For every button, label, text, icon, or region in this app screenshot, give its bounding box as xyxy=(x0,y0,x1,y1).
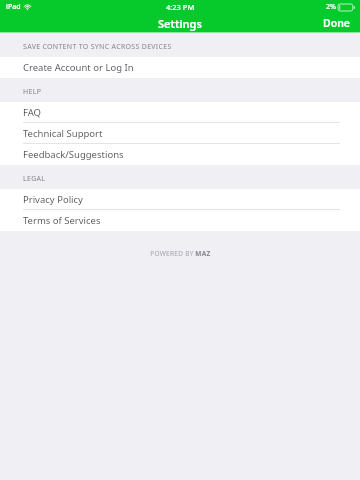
staticText: Terms of Services xyxy=(23,214,101,227)
staticText: 2% xyxy=(326,2,336,12)
button[interactable]: FAQ xyxy=(0,102,360,123)
button[interactable]: Technical Support xyxy=(0,123,360,144)
staticText: Create Account or Log In xyxy=(23,61,134,74)
staticText: 4:23 PM xyxy=(166,2,195,12)
staticText: SAVE CONTENT TO SYNC ACROSS DEVICES xyxy=(23,42,172,52)
staticText: LEGAL xyxy=(23,174,46,184)
staticText: Technical Support xyxy=(23,127,103,140)
button[interactable]: Feedback/Suggestions xyxy=(0,144,360,165)
staticText: Privacy Policy xyxy=(23,193,83,206)
staticText: MAZ xyxy=(195,249,211,258)
button[interactable]: Terms of Services xyxy=(0,210,360,231)
button[interactable]: Done xyxy=(314,14,360,32)
button[interactable]: Privacy Policy xyxy=(0,189,360,210)
staticText: iPad xyxy=(6,2,21,12)
staticText: Settings xyxy=(158,16,202,31)
staticText: Done xyxy=(323,16,351,30)
staticText: HELP xyxy=(23,87,42,97)
staticText: Feedback/Suggestions xyxy=(23,148,124,161)
button[interactable]: Create Account or Log In xyxy=(0,57,360,78)
staticText: FAQ xyxy=(23,106,42,119)
staticText: POWERED BY xyxy=(149,249,195,258)
